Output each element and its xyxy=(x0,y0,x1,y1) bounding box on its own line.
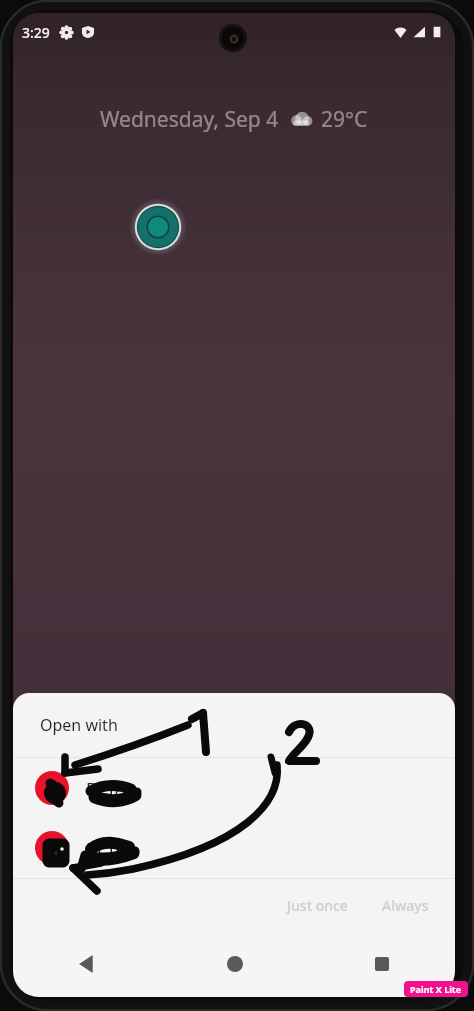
staticText: Paint X Lite xyxy=(410,983,462,995)
button[interactable]: Just once xyxy=(275,888,360,923)
button[interactable]: App icon xyxy=(129,198,187,256)
button[interactable]: Recent apps xyxy=(308,931,455,997)
button[interactable]: BETA xyxy=(13,758,455,818)
button[interactable]: Back xyxy=(13,931,161,997)
staticText: 3:29 xyxy=(22,23,50,42)
staticText: Always xyxy=(382,896,429,915)
button[interactable]: Wednesday, Sep 4 xyxy=(92,101,376,138)
staticText: BETA xyxy=(86,777,126,800)
button[interactable]: Always xyxy=(370,888,441,923)
staticText: 29°C xyxy=(321,105,368,134)
staticText: BETA xyxy=(86,837,126,860)
button[interactable]: Home xyxy=(161,931,308,997)
staticText: Wednesday, Sep 4 xyxy=(100,105,279,134)
button[interactable]: Paint X Lite watermark xyxy=(404,981,468,997)
staticText: Open with xyxy=(40,714,118,736)
button[interactable]: BETA xyxy=(13,818,455,878)
staticText: Just once xyxy=(287,896,348,915)
